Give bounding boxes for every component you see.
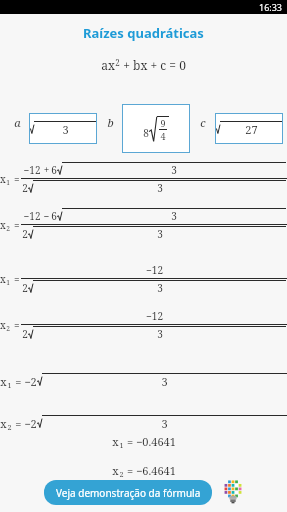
staticText: 1 (6, 278, 10, 287)
staticText: 3 (171, 163, 177, 177)
staticText: 6 (51, 163, 57, 177)
staticText: + (42, 163, 51, 177)
staticText: 3 (171, 209, 177, 223)
staticText: 3 (157, 227, 163, 241)
staticText: x (112, 434, 119, 449)
staticText: 2 (119, 469, 124, 479)
staticText: x (112, 463, 119, 478)
staticText: = (10, 172, 21, 186)
staticText: 1 (7, 380, 12, 390)
staticText: −12 (22, 163, 42, 177)
staticText: −12 (22, 209, 42, 223)
staticText: 2 (22, 281, 28, 295)
staticText: ax (101, 57, 115, 73)
staticText: b (107, 115, 114, 130)
staticText: 2 (7, 422, 12, 432)
button[interactable]: 27 (215, 113, 283, 144)
button[interactable]: 3 (29, 113, 97, 144)
staticText: 2 (22, 181, 28, 195)
staticText: x (0, 172, 6, 186)
staticText: 9 (160, 117, 166, 129)
staticText: 1 (6, 178, 10, 187)
button[interactable]: Dica (218, 477, 248, 507)
staticText: 3 (161, 374, 168, 389)
staticText: c (200, 115, 206, 130)
staticText: a (14, 115, 21, 130)
staticText: x (0, 374, 7, 389)
staticText: x (0, 318, 6, 332)
staticText: 6 (51, 209, 57, 223)
staticText: = −2 (12, 416, 37, 431)
staticText: = −2 (12, 374, 37, 389)
staticText: = (10, 318, 21, 332)
staticText: + bx + c = 0 (120, 57, 186, 73)
staticText: 27 (245, 122, 258, 137)
staticText: x (0, 416, 7, 431)
staticText: x (0, 218, 6, 232)
staticText: 2 (6, 324, 10, 333)
staticText: x (0, 272, 6, 286)
staticText: = (10, 218, 21, 232)
button[interactable]: 8 (122, 104, 190, 153)
staticText: Veja demonstração da fórmula (56, 486, 201, 500)
staticText: 2 (115, 57, 120, 68)
staticText: = −6.4641 (124, 463, 176, 478)
staticText: 3 (62, 122, 69, 137)
staticText: − (42, 209, 51, 223)
staticText: 1 (119, 440, 124, 450)
staticText: 2 (6, 224, 10, 233)
staticText: −12 (146, 309, 163, 323)
staticText: = −0.4641 (124, 434, 176, 449)
staticText: 3 (157, 327, 163, 341)
staticText: 16:33 (259, 1, 283, 13)
staticText: 3 (157, 281, 163, 295)
staticText: 2 (22, 327, 28, 341)
staticText: −12 (146, 263, 163, 277)
staticText: 4 (160, 130, 166, 142)
staticText: Raízes quadráticas (83, 24, 204, 42)
staticText: = (10, 272, 21, 286)
staticText: 3 (161, 416, 168, 431)
button[interactable]: Veja demonstração da fórmula (44, 480, 212, 505)
staticText: 8 (143, 126, 149, 140)
staticText: 3 (157, 181, 163, 195)
staticText: 2 (22, 227, 28, 241)
